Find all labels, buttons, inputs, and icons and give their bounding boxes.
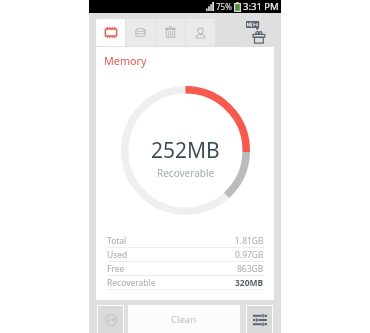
staticText: Used [107,249,128,261]
staticText: Clean [171,313,197,326]
staticText: Recoverable [107,277,156,289]
staticText: Free [107,263,125,275]
staticText: 320MB [235,277,264,289]
staticText: Recoverable [157,166,215,180]
staticText: 75% [216,1,232,12]
button[interactable]: Account [186,19,215,46]
staticText: Memory [104,53,147,68]
staticText: 3:31 PM [243,0,279,13]
button[interactable]: Recoverable [107,276,264,289]
button[interactable]: Clean [128,305,240,333]
staticText: 1.81GB [235,235,264,247]
button[interactable]: Rescan [98,306,123,333]
button[interactable]: Total [107,234,264,247]
staticText: 863GB [237,263,264,275]
staticText: 252MB [151,136,220,165]
staticText: Total [107,235,127,247]
button[interactable]: New gift [246,21,268,44]
button[interactable]: Storage [126,19,155,46]
button[interactable]: Used [107,248,264,261]
staticText: 0.97GB [235,249,264,261]
button[interactable]: Memory [96,19,125,46]
button[interactable]: Free [107,262,264,275]
button[interactable]: Junk files [156,19,185,46]
button[interactable]: Settings [247,306,272,333]
